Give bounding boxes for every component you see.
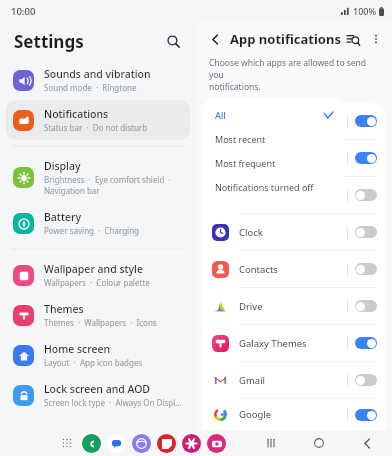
button[interactable]: Notifications off — [355, 263, 377, 275]
button[interactable]: Lock screen and AOD — [6, 375, 190, 415]
button[interactable]: Notifications on — [355, 115, 377, 127]
button[interactable]: Notifications off — [355, 374, 377, 386]
staticText: Settings — [14, 30, 84, 53]
button[interactable]: Most frequent — [203, 151, 343, 175]
staticText: Drive — [239, 300, 347, 313]
button[interactable]: Internet — [132, 434, 151, 453]
staticText: Wallpaper and style — [44, 262, 143, 276]
button[interactable]: Search settings — [160, 28, 186, 54]
button[interactable]: Google — [203, 399, 385, 430]
button[interactable]: Chrome — [203, 177, 385, 213]
staticText: 10:00 — [11, 5, 36, 18]
staticText: Calendar — [239, 115, 347, 128]
staticText: Gmail — [239, 374, 347, 387]
button[interactable]: More options — [367, 29, 384, 49]
button[interactable]: Clock — [203, 214, 385, 250]
button[interactable]: Back — [204, 28, 226, 50]
button[interactable]: Notes — [157, 434, 176, 453]
button[interactable]: Camera — [207, 434, 226, 453]
staticText: Home screen — [44, 342, 111, 356]
button[interactable]: Notifications on — [355, 152, 377, 164]
staticText: Notifications — [44, 107, 109, 121]
staticText: Camera — [239, 152, 347, 165]
button[interactable]: Drive — [203, 288, 385, 324]
button[interactable]: Gmail — [203, 362, 385, 398]
button[interactable]: Notifications turned off — [203, 175, 343, 199]
button[interactable]: Display — [6, 152, 190, 203]
staticText: Galaxy Themes — [239, 337, 347, 350]
button[interactable]: Recents — [260, 432, 282, 454]
button[interactable]: Home — [308, 432, 330, 454]
staticText: Themes · Wallpapers · Icons — [44, 317, 157, 328]
staticText: Notifications turned off — [215, 181, 314, 193]
staticText: Brightness · Eye comfort shield · — [44, 174, 171, 185]
staticText: Most frequent — [215, 157, 276, 169]
staticText: Battery — [44, 210, 81, 224]
button[interactable]: Calendar — [203, 103, 385, 139]
button[interactable]: Notifications on — [355, 409, 377, 421]
button[interactable]: Battery — [6, 203, 190, 243]
button[interactable]: Sounds and vibration — [6, 60, 190, 100]
staticText: Contacts — [239, 263, 347, 276]
button[interactable]: Notifications off — [355, 189, 377, 201]
button[interactable]: Notifications on — [355, 337, 377, 349]
staticText: Lock screen and AOD — [44, 382, 151, 396]
button[interactable]: Galaxy Themes — [203, 325, 385, 361]
button[interactable]: Messages — [107, 434, 126, 453]
button[interactable]: All — [203, 103, 343, 127]
staticText: Display — [44, 159, 81, 173]
staticText: Choose which apps are allowed to send yo… — [209, 57, 380, 93]
staticText: Themes — [44, 302, 84, 316]
staticText: Status bar · Do not disturb — [44, 122, 148, 133]
staticText: Google — [239, 408, 347, 421]
button[interactable]: Notifications off — [355, 300, 377, 312]
button[interactable]: Most recent — [203, 127, 343, 151]
staticText: Clock — [239, 226, 347, 239]
staticText: All — [215, 109, 226, 121]
button[interactable]: Notifications off — [355, 226, 377, 238]
button[interactable]: Home screen — [6, 335, 190, 375]
button[interactable]: Themes — [6, 295, 190, 335]
button[interactable]: Wallpaper and style — [6, 255, 190, 295]
staticText: Navigation bar — [44, 185, 100, 196]
button[interactable]: Contacts — [203, 251, 385, 287]
staticText: Layout · App icon badges — [44, 357, 143, 368]
button[interactable]: Search and filter — [341, 27, 365, 51]
button[interactable]: Back — [356, 432, 378, 454]
button[interactable]: Phone — [82, 434, 101, 453]
staticText: Screen lock type · Always On Display — [44, 397, 183, 408]
staticText: Wallpapers · Colour palette — [44, 277, 150, 288]
staticText: Sounds and vibration — [44, 67, 151, 81]
button[interactable]: Notifications — [6, 100, 190, 140]
staticText: Chrome — [239, 189, 347, 202]
button[interactable]: Camera — [203, 140, 385, 176]
staticText: App notifications — [230, 30, 341, 48]
staticText: Power saving · Charging — [44, 225, 140, 236]
staticText: Sound mode · Ringtone — [44, 82, 137, 93]
button[interactable]: Galaxy Store — [182, 434, 201, 453]
staticText: 100% — [353, 5, 377, 17]
staticText: Most recent — [215, 133, 266, 145]
button[interactable]: Apps — [58, 434, 76, 452]
